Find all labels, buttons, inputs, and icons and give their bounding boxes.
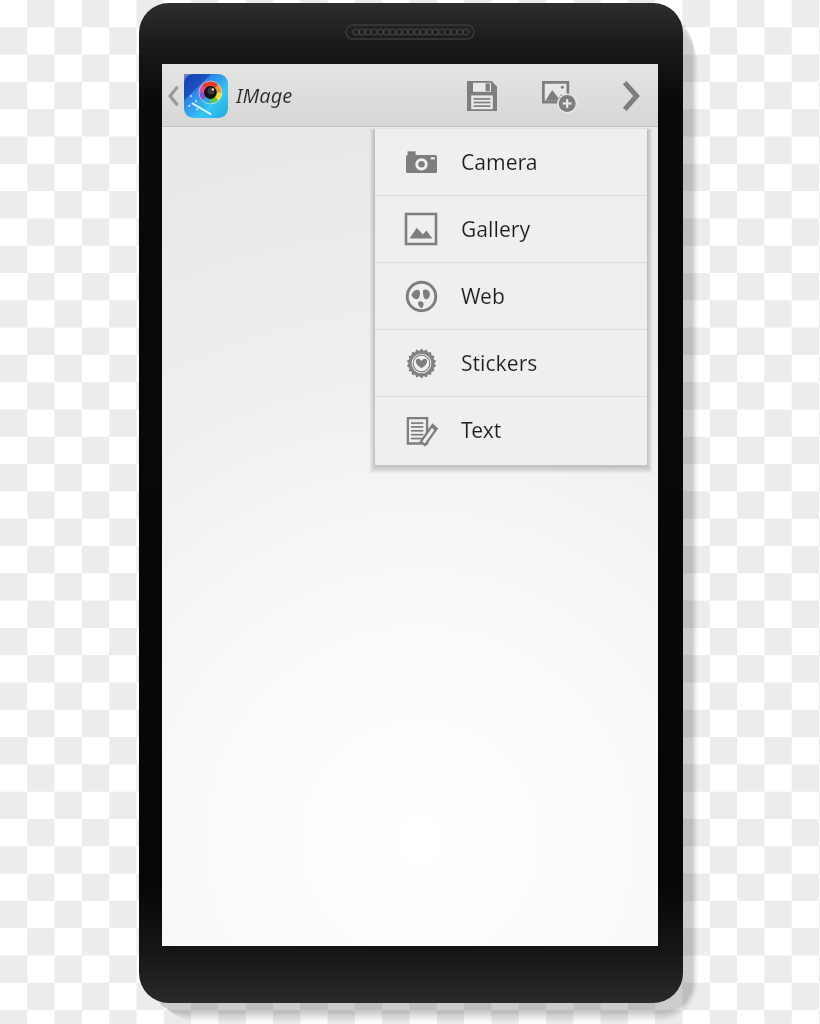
button[interactable]: Web <box>375 263 647 329</box>
staticText: Text <box>461 416 502 445</box>
staticText: Gallery <box>461 215 531 244</box>
staticText: Camera <box>461 148 538 177</box>
button[interactable]: Add image <box>527 64 590 127</box>
staticText: Stickers <box>461 349 538 378</box>
staticText: IMage <box>236 82 293 109</box>
button[interactable]: Camera <box>375 129 647 195</box>
button[interactable]: Gallery <box>375 196 647 262</box>
button[interactable]: Text <box>375 397 647 463</box>
staticText: Web <box>461 282 505 311</box>
button[interactable]: Stickers <box>375 330 647 396</box>
button[interactable]: Next <box>602 64 658 127</box>
button[interactable]: Save <box>450 64 513 127</box>
button[interactable]: IMage <box>162 64 293 127</box>
